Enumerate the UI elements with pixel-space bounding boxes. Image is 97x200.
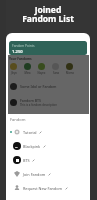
staticText: BP <box>15 145 19 148</box>
staticText: Mina <box>24 71 31 75</box>
button[interactable]: BTS <box>9 153 90 167</box>
staticText: Momo <box>66 71 74 75</box>
staticText: Jihyo <box>11 71 17 75</box>
staticText: Blackpink <box>23 144 41 149</box>
button[interactable]: Jihyo <box>9 63 18 75</box>
staticText: Fandom Points <box>12 44 35 48</box>
staticText: Some Idol or Fandom <box>20 84 57 89</box>
staticText: Join Fandom <box>23 172 46 177</box>
button[interactable]: Fandom Points <box>9 41 87 55</box>
staticText: 1.250 <box>12 49 23 55</box>
staticText: BTS <box>23 158 30 163</box>
staticText: Your Fandoms <box>9 57 32 61</box>
button[interactable]: Mina <box>23 63 32 75</box>
button[interactable]: Momo <box>65 63 74 75</box>
staticText: Fandom <box>10 117 26 122</box>
button[interactable]: Some Idol or Fandom <box>10 78 86 94</box>
staticText: This is a fandom description <box>20 103 57 107</box>
button[interactable]: Tutorial <box>9 125 90 139</box>
staticText: Tutorial <box>23 130 37 135</box>
button[interactable]: Nayeon <box>37 63 46 75</box>
button[interactable]: Fandom BTS <box>10 94 86 110</box>
staticText: Nayeon <box>37 71 46 75</box>
button[interactable]: Join Fandom <box>9 167 90 181</box>
button[interactable]: Sana <box>51 63 60 75</box>
button[interactable]: Request New Fandom <box>9 181 90 195</box>
staticText: Fandom BTS <box>20 98 42 103</box>
staticText: Sana <box>53 71 59 75</box>
button[interactable]: BP <box>9 139 90 153</box>
staticText: Joined Fandom List <box>6 4 90 25</box>
staticText: Request New Fandom <box>23 186 63 191</box>
